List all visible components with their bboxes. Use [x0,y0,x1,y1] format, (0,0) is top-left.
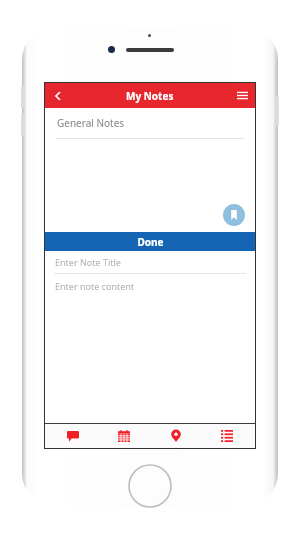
button[interactable]: Enter Note Title [55,251,255,273]
button[interactable]: Done [45,232,255,251]
button[interactable]: Location [153,424,199,448]
button[interactable]: Menu [230,83,255,108]
button[interactable]: List [204,424,250,448]
button[interactable]: Back [45,83,70,108]
button[interactable]: Enter note content [55,280,255,423]
button[interactable]: Messages [50,424,96,448]
staticText: General Notes [57,116,125,130]
staticText: Enter Note Title [55,256,121,268]
button[interactable]: Bookmark note [223,204,245,226]
button[interactable]: Calendar [101,424,147,448]
staticText: Enter note content [55,280,135,292]
staticText: Done [137,235,164,249]
staticText: My Notes [126,89,174,103]
